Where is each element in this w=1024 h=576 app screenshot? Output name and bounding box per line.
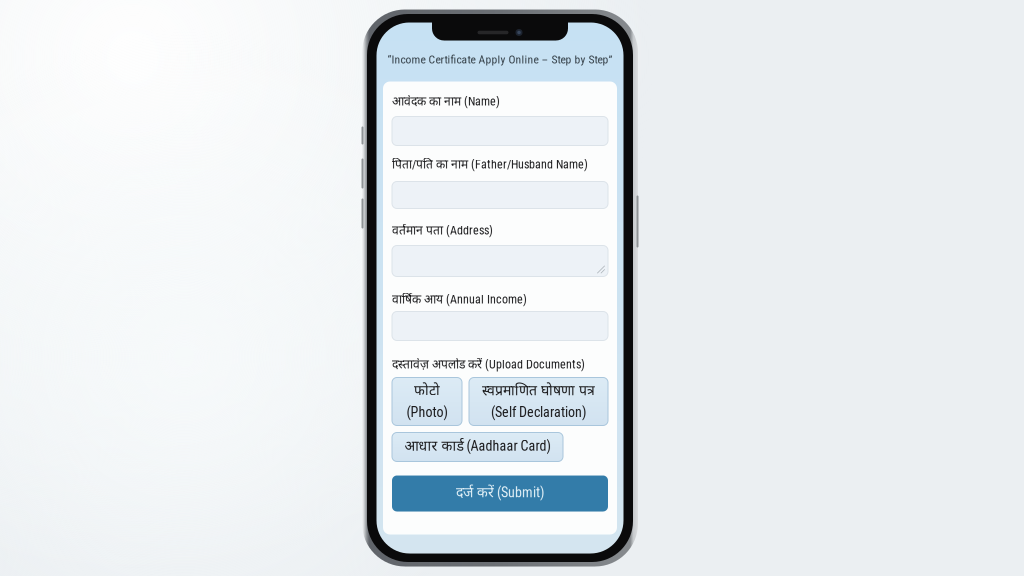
staticText: “Income Certificate Apply Online – Step … xyxy=(387,53,612,66)
staticText: (Self Declaration) xyxy=(491,404,586,420)
staticText: वार्षिक आय (Annual Income) xyxy=(392,292,527,308)
staticText: आधार कार्ड (Aadhaar Card) xyxy=(404,438,550,456)
button[interactable]: स्वप्रमाणित घोषणा पत्र xyxy=(469,377,608,425)
button[interactable]: दर्ज करें (Submit) xyxy=(392,475,608,511)
staticText: स्वप्रमाणित घोषणा पत्र xyxy=(482,383,595,401)
staticText: दर्ज करें (Submit) xyxy=(456,484,544,503)
button[interactable]: आधार कार्ड (Aadhaar Card) xyxy=(392,432,563,461)
staticText: वर्तमान पता (Address) xyxy=(392,223,493,239)
staticText: आवेदक का नाम (Name) xyxy=(392,94,500,110)
button[interactable]: फोटो xyxy=(392,377,462,425)
staticText: फोटो xyxy=(414,383,440,401)
staticText: पिता/पति का नाम (Father/Husband Name) xyxy=(392,157,588,173)
staticText: दस्तावेज़ अपलोड करें (Upload Documents) xyxy=(392,357,585,373)
staticText: (Photo) xyxy=(406,404,447,420)
